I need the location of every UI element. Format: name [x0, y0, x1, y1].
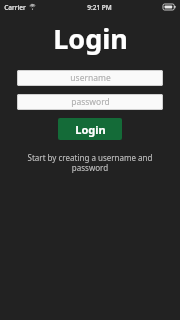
button[interactable]: Login — [58, 118, 122, 140]
staticText: 9:21 PM — [87, 3, 112, 12]
staticText: Start by creating a username and passwor… — [26, 152, 154, 173]
staticText: Login — [75, 122, 106, 137]
button[interactable]: password — [17, 94, 163, 110]
staticText: Login — [53, 20, 128, 57]
staticText: Carrier — [4, 3, 26, 12]
button[interactable]: username — [17, 70, 163, 86]
staticText: password — [71, 96, 110, 108]
staticText: username — [70, 72, 111, 84]
